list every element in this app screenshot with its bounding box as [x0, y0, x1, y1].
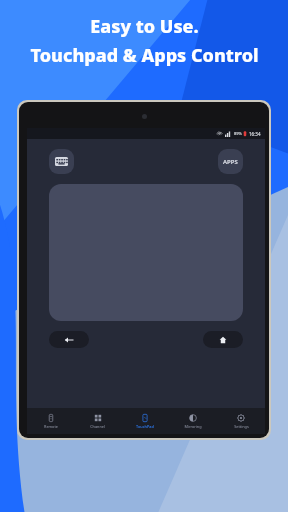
staticText: Settings [234, 424, 249, 429]
staticText: 16:34 [249, 131, 261, 137]
staticText: TouchPad [136, 424, 154, 429]
staticText: Remote [44, 424, 58, 429]
button[interactable]: APPS [218, 149, 243, 174]
button[interactable]: Mirroring [169, 408, 217, 434]
staticText: 89% [234, 131, 242, 136]
staticText: APPS [223, 158, 238, 166]
button[interactable]: Keyboard [49, 149, 74, 174]
staticText: Touchpad & Apps Control [30, 43, 259, 68]
button[interactable]: Settings [217, 408, 265, 434]
staticText: Mirroring [184, 424, 202, 429]
button[interactable]: Back [49, 331, 89, 348]
button[interactable]: Home [203, 331, 243, 348]
staticText: Easy to Use. [90, 14, 199, 39]
button[interactable]: Remote [27, 408, 74, 434]
button[interactable]: TouchPad [121, 408, 169, 434]
button[interactable]: Channel [74, 408, 121, 434]
staticText: Channel [90, 424, 105, 429]
